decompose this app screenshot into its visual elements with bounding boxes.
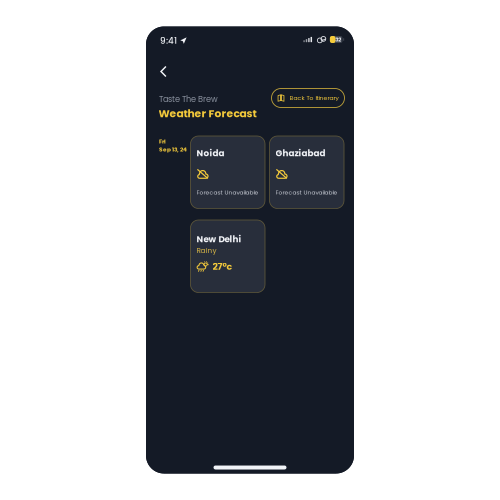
button[interactable]: Noida xyxy=(190,136,265,208)
staticText: New Delhi xyxy=(196,233,241,245)
button[interactable]: Back To Itinerary xyxy=(271,88,344,107)
staticText: Noida xyxy=(196,147,224,159)
staticText: 32 xyxy=(335,36,341,43)
staticText: Fri xyxy=(159,137,166,145)
staticText: Forecast Unavailable xyxy=(196,188,258,196)
staticText: Sep 13, 24 xyxy=(159,145,187,153)
staticText: Weather Forecast xyxy=(158,106,256,121)
button[interactable]: Back xyxy=(153,60,174,83)
button[interactable]: New Delhi xyxy=(190,220,265,292)
button[interactable]: Ghaziabad xyxy=(269,136,344,208)
staticText: Forecast Unavailable xyxy=(275,188,337,196)
staticText: 27ºc xyxy=(212,260,232,273)
staticText: Back To Itinerary xyxy=(289,94,338,102)
staticText: Ghaziabad xyxy=(275,147,325,159)
staticText: 9:41 xyxy=(160,34,177,47)
staticText: Rainy xyxy=(196,245,216,255)
staticText: Taste The Brew xyxy=(159,93,218,105)
